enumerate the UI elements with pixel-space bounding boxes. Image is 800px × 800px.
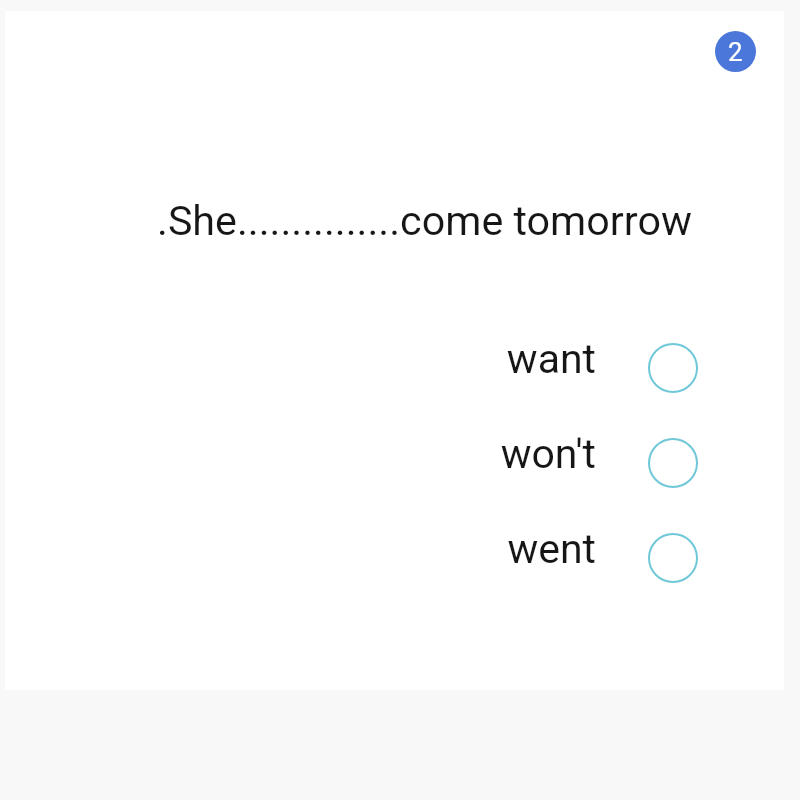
staticText: 2 [728, 37, 743, 67]
staticText: .She...............come tomorrow [157, 197, 692, 245]
button[interactable]: Question 2 of the quiz [715, 31, 756, 72]
staticText: won't [435, 430, 596, 478]
staticText: want [435, 335, 596, 383]
button[interactable]: want [435, 336, 715, 398]
button[interactable]: went [435, 526, 715, 588]
button[interactable]: won't [435, 431, 715, 493]
staticText: went [435, 525, 596, 573]
